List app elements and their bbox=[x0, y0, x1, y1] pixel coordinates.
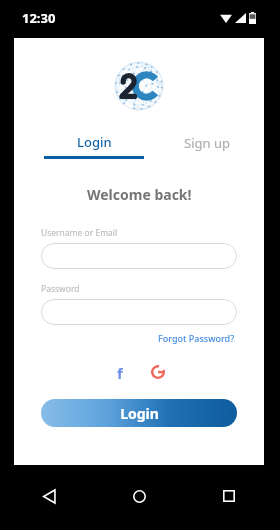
button[interactable] bbox=[41, 299, 237, 325]
button[interactable] bbox=[41, 243, 237, 269]
staticText: Password bbox=[41, 283, 80, 295]
staticText: Welcome back! bbox=[87, 185, 192, 204]
button[interactable]: Login bbox=[44, 133, 144, 159]
button[interactable]: Forgot Password? bbox=[156, 330, 237, 346]
button[interactable]: Sign up bbox=[184, 133, 234, 152]
staticText: Sign up bbox=[184, 134, 230, 152]
staticText: f bbox=[117, 363, 123, 381]
button[interactable]: Sign in with Google bbox=[149, 363, 167, 381]
button[interactable]: Sign in with Facebook bbox=[111, 363, 129, 381]
button[interactable]: Login bbox=[41, 399, 237, 427]
staticText: 12:30 bbox=[22, 9, 56, 27]
staticText: Login bbox=[120, 404, 159, 423]
button[interactable]: Home bbox=[122, 479, 156, 513]
button[interactable]: Back bbox=[32, 479, 66, 513]
staticText: Username or Email bbox=[41, 227, 118, 239]
staticText: Login bbox=[77, 133, 112, 151]
button[interactable]: Recent apps bbox=[212, 479, 246, 513]
